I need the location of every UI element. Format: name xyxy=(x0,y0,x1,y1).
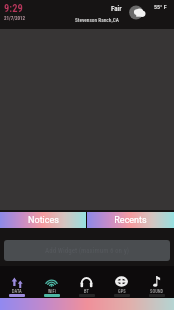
staticText: 21/7/2012 xyxy=(4,15,26,21)
button[interactable]: Notices xyxy=(0,212,86,228)
button[interactable]: Recents xyxy=(87,212,174,228)
staticText: 55° F xyxy=(154,3,167,10)
staticText: Add Widget (maximum 6 on y) xyxy=(45,247,130,255)
staticText: BT xyxy=(84,289,89,294)
staticText: 9:29 xyxy=(4,2,23,14)
staticText: Recents xyxy=(114,215,147,226)
staticText: Stevenson Ranch,CA xyxy=(75,17,119,23)
staticText: Fair xyxy=(111,5,122,13)
staticText: Notices xyxy=(28,215,59,226)
other: Weather xyxy=(129,5,144,20)
button[interactable]: WiFi xyxy=(34,266,69,298)
staticText: SOUND xyxy=(150,289,164,294)
button[interactable]: DATA xyxy=(0,266,34,298)
button[interactable]: GPS xyxy=(104,266,139,298)
staticText: DATA xyxy=(12,289,22,294)
button[interactable]: BT xyxy=(69,266,104,298)
staticText: GPS xyxy=(118,289,126,294)
button[interactable]: SOUND xyxy=(139,266,174,298)
staticText: WiFi xyxy=(48,289,56,294)
